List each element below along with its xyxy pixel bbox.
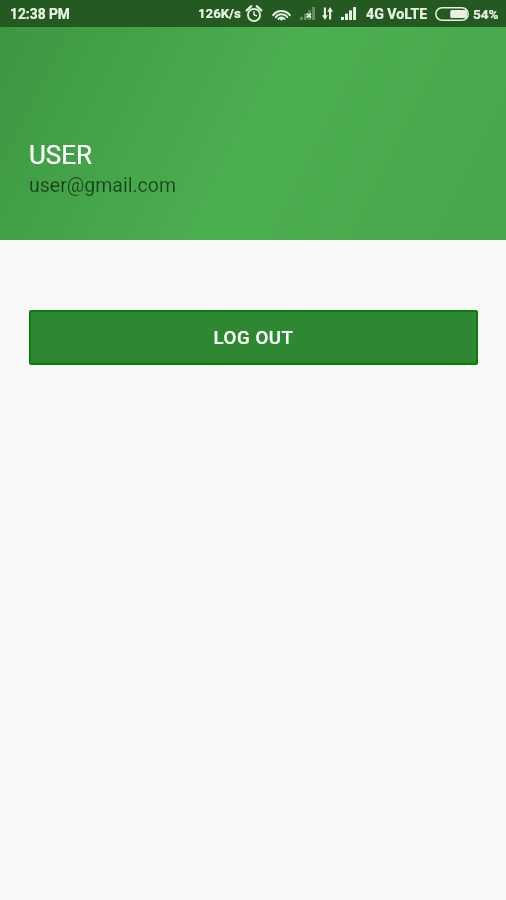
staticText: 12:38 PM (10, 6, 70, 22)
button[interactable]: LOG OUT (31, 312, 476, 363)
staticText: LOG OUT (213, 327, 294, 349)
staticText: 126K/s (198, 6, 241, 21)
staticText: 4G VoLTE (366, 6, 428, 23)
staticText: 54% (473, 6, 499, 22)
staticText: user@gmail.com (29, 174, 176, 197)
staticText: USER (29, 140, 93, 170)
